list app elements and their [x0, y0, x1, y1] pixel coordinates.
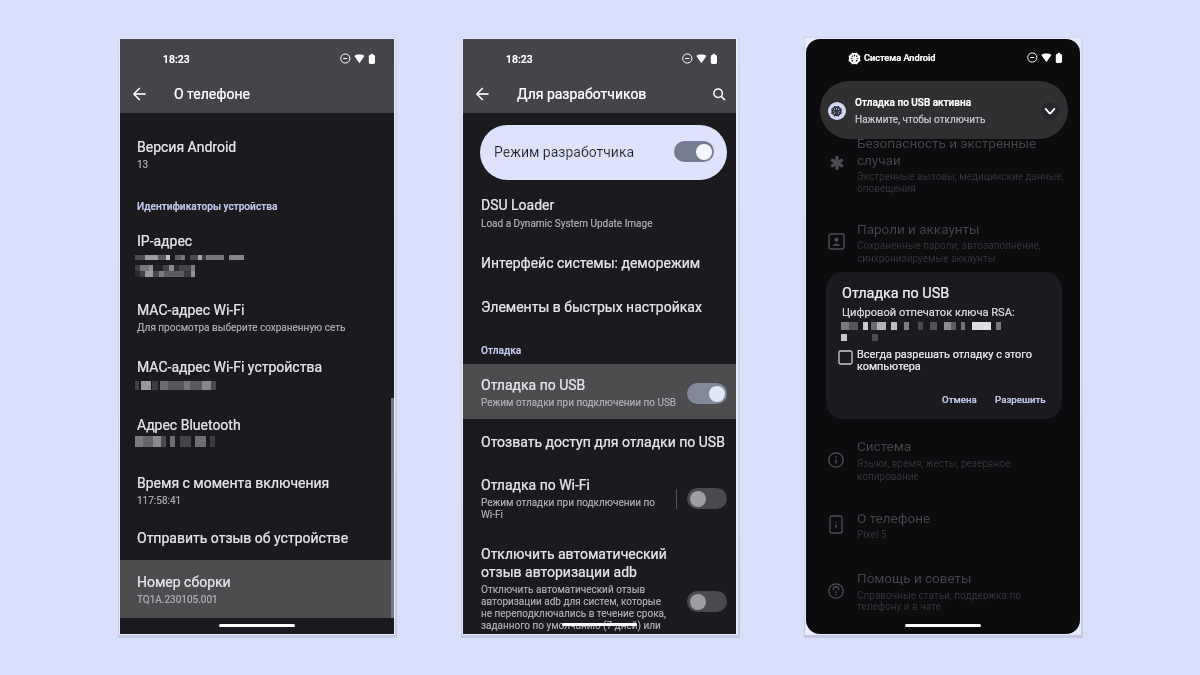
staticText: Элементы в быстрых настройках — [481, 299, 702, 315]
staticText: Отладка по USB — [842, 285, 950, 302]
button[interactable]: Разрешить — [989, 390, 1051, 410]
staticText: Версия Android — [137, 139, 237, 155]
button[interactable] — [120, 560, 394, 618]
staticText: Load a Dynamic System Update Image — [481, 218, 653, 230]
staticText: О телефоне — [174, 86, 250, 102]
staticText: IP-адрес — [137, 233, 193, 249]
button[interactable]: Отмена — [936, 390, 984, 410]
staticText: 18:23 — [506, 53, 533, 65]
button[interactable] — [463, 557, 736, 585]
staticText: О телефоне — [857, 510, 931, 526]
staticText: Идентификаторы устройства — [137, 201, 278, 213]
staticText: заданного по умолчанию (7 дней) или — [481, 620, 661, 632]
button[interactable] — [463, 191, 736, 231]
staticText: MAC-адрес Wi-Fi — [137, 302, 245, 318]
button[interactable]: Выключено — [687, 591, 727, 612]
button[interactable] — [463, 370, 736, 410]
staticText: Режим отладки при подключении по — [481, 497, 655, 509]
staticText: Отозвать доступ для отладки по USB — [481, 434, 725, 450]
button[interactable]: Назад — [130, 84, 150, 104]
staticText: Адрес Bluetooth — [137, 417, 241, 433]
staticText: Разрешить — [995, 394, 1046, 405]
button[interactable]: Развернуть — [1041, 102, 1059, 120]
button[interactable] — [120, 295, 394, 335]
staticText: 18:23 — [163, 53, 190, 65]
staticText: Нажмите, чтобы отключить — [855, 114, 986, 126]
button[interactable] — [463, 427, 736, 455]
staticText: Языки, время, жесты, резервное — [857, 458, 1011, 470]
button[interactable] — [480, 125, 727, 180]
button[interactable] — [120, 352, 394, 380]
staticText: оповещения — [857, 183, 916, 195]
staticText: Цифровой отпечаток ключа RSA: — [842, 306, 1015, 319]
staticText: Отладка по Wi-Fi — [481, 477, 590, 493]
button[interactable]: Включено — [687, 383, 727, 404]
button[interactable] — [820, 81, 1068, 139]
button[interactable]: Всегда разрешать — [839, 351, 852, 364]
staticText: TQ1A.230105.001 — [137, 594, 218, 606]
staticText: 13 — [137, 159, 149, 171]
staticText: Режим разработчика — [494, 144, 635, 160]
staticText: Режим отладки при подключении по USB — [481, 397, 677, 409]
button[interactable] — [463, 292, 736, 320]
staticText: Отключить автоматический отзыв — [481, 584, 646, 596]
staticText: Для просмотра выберите сохраненную сеть — [137, 322, 346, 334]
button[interactable] — [463, 364, 736, 419]
staticText: Отладка по USB — [481, 377, 586, 393]
staticText: Время с момента включения — [137, 475, 330, 491]
button[interactable] — [120, 410, 394, 438]
button[interactable] — [463, 248, 736, 276]
staticText: Помощь и советы — [857, 570, 972, 586]
staticText: Система — [857, 438, 912, 454]
button[interactable]: Включено — [674, 141, 714, 162]
staticText: Номер сборки — [137, 574, 231, 590]
button[interactable] — [120, 523, 394, 551]
button[interactable] — [463, 540, 736, 568]
staticText: Отправить отзыв об устройстве — [137, 530, 349, 546]
button[interactable] — [463, 470, 736, 522]
staticText: Экстренные вызовы, медицинские данные, — [857, 171, 1064, 183]
staticText: Для разработчиков — [517, 86, 647, 102]
staticText: синхронизируемые аккаунты — [857, 253, 996, 265]
staticText: 117:58:41 — [137, 495, 182, 507]
staticText: MAC-адрес Wi-Fi устройства — [137, 359, 323, 375]
staticText: копирование — [857, 471, 919, 483]
staticText: Пароли и аккаунты — [857, 221, 980, 237]
staticText: Отладка — [481, 345, 522, 357]
staticText: Отладка по USB активна — [855, 97, 972, 109]
staticText: Pixel 5 — [857, 529, 887, 541]
staticText: авторизации adb для систем, которые — [481, 596, 661, 608]
staticText: Wi-Fi — [481, 509, 504, 521]
staticText: телефону и в чате — [857, 601, 941, 613]
staticText: Интерфейс системы: деморежим — [481, 255, 701, 271]
button[interactable]: Поиск — [709, 85, 729, 105]
staticText: Система Android — [864, 52, 936, 63]
staticText: DSU Loader — [481, 197, 555, 213]
button[interactable] — [120, 132, 394, 172]
staticText: Отключить автоматический — [481, 546, 667, 562]
staticText: отзыв авторизации adb — [481, 564, 637, 580]
staticText: не переподключались в течение срока, — [481, 608, 666, 620]
button[interactable]: Назад — [473, 84, 493, 104]
button[interactable] — [120, 226, 394, 254]
button[interactable]: Выключено — [687, 488, 727, 509]
button[interactable] — [120, 567, 394, 607]
staticText: Сохраненные пароли, автозаполнение, — [857, 240, 1041, 252]
staticText: Справочные статьи, поддержка по — [857, 590, 1021, 602]
button[interactable] — [120, 468, 394, 508]
staticText: Безопасность и экстренные — [857, 135, 1037, 151]
staticText: компьютера — [857, 360, 921, 372]
staticText: Всегда разрешать отладку с этого — [857, 348, 1032, 360]
staticText: случаи — [857, 152, 901, 168]
staticText: Отмена — [942, 394, 977, 405]
